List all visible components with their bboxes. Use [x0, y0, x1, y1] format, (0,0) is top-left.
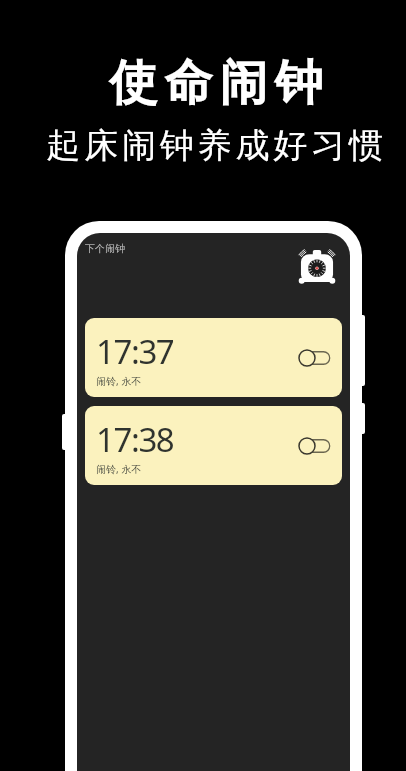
staticText: 闹铃, 永不 — [96, 374, 142, 388]
button[interactable]: Toggle alarm — [299, 434, 333, 458]
button[interactable]: Alarm app — [295, 246, 339, 290]
staticText: 17:38 — [96, 417, 174, 462]
staticText: 闹铃, 永不 — [96, 462, 142, 476]
staticText: 下个闹钟 — [85, 242, 125, 255]
button[interactable]: Toggle alarm — [299, 346, 333, 370]
button[interactable]: 17:37 — [85, 318, 342, 397]
staticText: 使命闹钟 — [109, 53, 330, 113]
staticText: 起床闹钟养成好习惯 — [46, 124, 387, 167]
button[interactable]: 17:38 — [85, 406, 342, 485]
staticText: 17:37 — [96, 329, 174, 374]
